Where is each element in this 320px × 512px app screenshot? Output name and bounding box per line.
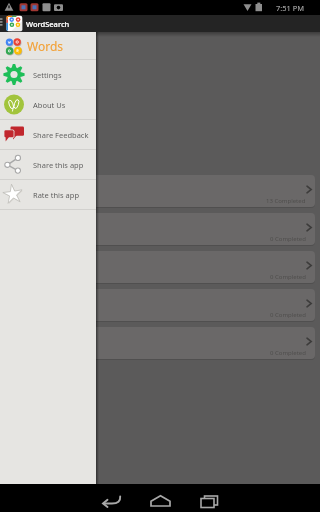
- staticText: Share this app: [33, 160, 84, 170]
- staticText: Share Feedback: [33, 130, 89, 140]
- button[interactable]: Rate this app: [0, 180, 96, 209]
- button[interactable]: Share Feedback: [0, 120, 96, 149]
- button[interactable]: 0 Completed: [4, 251, 315, 283]
- staticText: About Us: [33, 100, 66, 110]
- staticText: 0 Completed: [270, 349, 306, 357]
- button[interactable]: 0 Completed: [4, 213, 315, 245]
- staticText: 0 Completed: [270, 235, 306, 243]
- button[interactable]: [185, 484, 234, 512]
- staticText: 0 Completed: [270, 311, 306, 319]
- staticText: Words: [27, 38, 64, 54]
- button[interactable]: Share this app: [0, 150, 96, 179]
- staticText: 0 Completed: [270, 273, 306, 281]
- staticText: 7:51 PM: [276, 3, 305, 13]
- staticText: Rate this app: [33, 190, 80, 200]
- button[interactable]: [136, 484, 185, 512]
- button[interactable]: 0 Completed: [4, 327, 315, 359]
- staticText: Settings: [33, 70, 62, 80]
- staticText: WordSearch: [26, 19, 70, 29]
- button[interactable]: [87, 484, 136, 512]
- button[interactable]: 13 Completed: [4, 175, 315, 207]
- button[interactable]: Settings: [0, 60, 96, 89]
- staticText: 13 Completed: [266, 197, 306, 205]
- button[interactable]: 0 Completed: [4, 289, 315, 321]
- button[interactable]: About Us: [0, 90, 96, 119]
- button[interactable]: Words: [0, 32, 96, 59]
